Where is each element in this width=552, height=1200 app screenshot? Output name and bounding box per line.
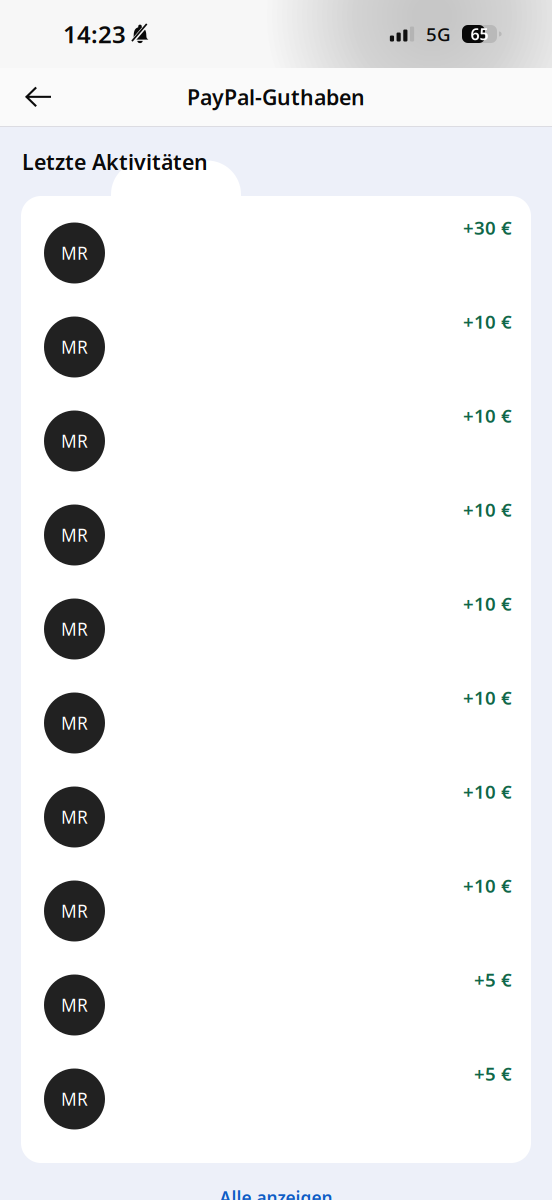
staticText: MR	[61, 241, 88, 264]
button[interactable]: MR	[21, 206, 531, 300]
staticText: +10 €	[463, 685, 512, 710]
button[interactable]: Zurück	[8, 68, 68, 126]
staticText: MR	[61, 899, 88, 922]
staticText: +10 €	[463, 779, 512, 804]
button[interactable]: MR	[21, 394, 531, 488]
staticText: MR	[61, 1087, 88, 1110]
button[interactable]: MR	[21, 1052, 531, 1146]
button[interactable]: MR	[21, 488, 531, 582]
staticText: PayPal-Guthaben	[187, 83, 365, 111]
staticText: MR	[61, 993, 88, 1016]
staticText: +10 €	[463, 873, 512, 898]
button[interactable]: MR	[21, 958, 531, 1052]
staticText: MR	[61, 617, 88, 640]
button[interactable]: MR	[21, 582, 531, 676]
staticText: 65	[470, 23, 488, 45]
staticText: +30 €	[463, 215, 512, 240]
staticText: MR	[61, 523, 88, 546]
staticText: Letzte Aktivitäten	[22, 147, 208, 176]
staticText: 14:23	[63, 18, 126, 50]
staticText: +10 €	[463, 591, 512, 616]
button[interactable]: MR	[21, 676, 531, 770]
staticText: +10 €	[463, 309, 512, 334]
staticText: MR	[61, 805, 88, 828]
staticText: Alle anzeigen	[219, 1186, 332, 1200]
staticText: MR	[61, 429, 88, 452]
staticText: MR	[61, 335, 88, 358]
staticText: +5 €	[474, 967, 512, 992]
staticText: +10 €	[463, 403, 512, 428]
button[interactable]: MR	[21, 770, 531, 864]
staticText: +5 €	[474, 1061, 512, 1086]
button[interactable]: Alle anzeigen	[0, 1163, 552, 1200]
button[interactable]: MR	[21, 300, 531, 394]
button[interactable]: MR	[21, 864, 531, 958]
staticText: +10 €	[463, 497, 512, 522]
staticText: MR	[61, 711, 88, 734]
staticText: 5G	[426, 22, 451, 46]
